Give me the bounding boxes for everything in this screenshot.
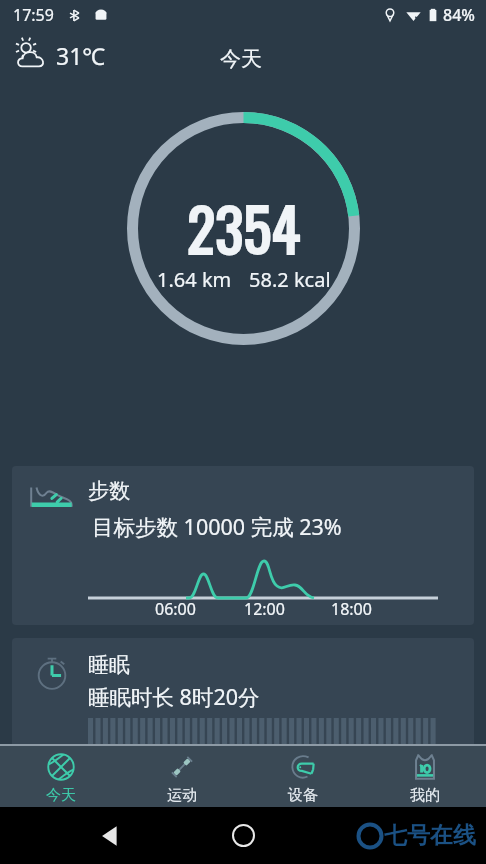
staticText: 84% — [443, 4, 475, 26]
staticText: 17:59 — [13, 4, 54, 26]
staticText: 今天 — [46, 786, 76, 805]
other: 设备 — [289, 753, 317, 781]
staticText: 我的 — [410, 786, 440, 805]
staticText: 31℃ — [56, 40, 106, 71]
staticText: 目标步数 10000 完成 23% — [92, 512, 342, 541]
button[interactable]: 设备 — [242, 746, 364, 807]
staticText: 2354 — [187, 184, 300, 271]
button[interactable]: 今天 — [0, 746, 121, 807]
staticText: 设备 — [288, 786, 318, 805]
button[interactable]: 我的 — [364, 746, 486, 807]
button[interactable]: Back — [99, 825, 121, 847]
staticText: 运动 — [167, 786, 197, 805]
staticText: 06:00 — [155, 598, 196, 620]
staticText: 18:00 — [331, 598, 372, 620]
other: 运动 — [168, 753, 196, 781]
other: 我的 — [411, 753, 439, 781]
button[interactable]: Home — [232, 824, 255, 847]
staticText: 1.64 km — [157, 266, 232, 293]
other: 今天 — [47, 753, 75, 781]
button[interactable]: 步数 — [12, 466, 474, 625]
staticText: 今天 — [220, 46, 262, 72]
staticText: 七号在线 — [384, 821, 476, 850]
button[interactable]: 睡眠 — [12, 638, 474, 764]
staticText: 步数 — [88, 478, 130, 504]
staticText: 睡眠时长 8时20分 — [88, 682, 260, 711]
staticText: 12:00 — [244, 598, 285, 620]
staticText: 58.2 kcal — [249, 266, 331, 293]
button[interactable]: 运动 — [121, 746, 242, 807]
staticText: 睡眠 — [88, 652, 130, 678]
